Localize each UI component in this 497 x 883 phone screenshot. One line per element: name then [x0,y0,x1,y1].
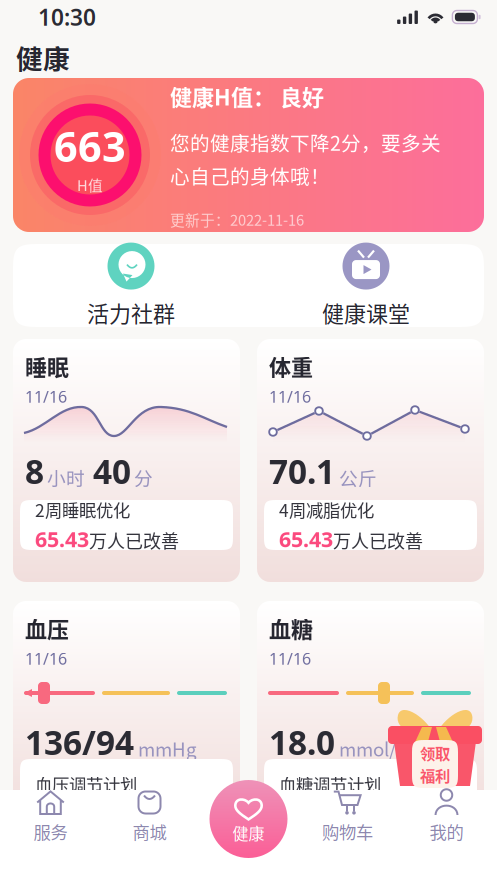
button[interactable]: 4周减脂优化 [264,500,477,550]
staticText: 136/94 [25,720,134,764]
staticText: 睡眠 [25,350,69,382]
staticText: 活力社群 [87,297,175,328]
button[interactable]: 睡眠 [13,339,240,582]
staticText: 血糖 [269,612,313,644]
staticText: mmHg [138,735,197,762]
staticText: 血糖调节计划 [279,771,381,797]
staticText: 健康H值： 良好 [170,80,324,112]
staticText: 11/16 [269,386,311,407]
staticText: 万人已改善 [333,527,423,553]
staticText: 11/16 [25,386,67,407]
staticText: 服务 [33,819,67,844]
staticText: 65.43 [35,525,89,553]
button[interactable]: 血糖调节计划 [264,759,477,809]
staticText: 健康 [232,821,264,844]
button[interactable]: 663 [13,78,484,232]
staticText: 健康 [16,38,70,77]
staticText: 分 [134,464,153,491]
button[interactable]: 血压 [13,601,240,811]
staticText: mmol/L [339,735,406,762]
button[interactable]: 血糖 [257,601,484,811]
button[interactable]: 健康课堂 [248,244,483,327]
staticText: 领取 [420,742,450,764]
button[interactable]: 领取福利 [386,700,484,792]
staticText: 小时 [47,464,85,491]
staticText: 65.43 [279,525,333,553]
button[interactable]: 血压调节计划 [20,759,233,809]
staticText: 血压 [25,612,69,644]
staticText: 11/16 [269,648,311,669]
staticText: 11/16 [25,648,67,669]
button[interactable]: 购物车 [298,790,397,883]
staticText: 2周睡眠优化 [35,497,130,522]
staticText: 4周减脂优化 [279,497,374,522]
staticText: 万人已改善 [89,527,179,553]
staticText: 70.1 [269,449,335,493]
staticText: 40 [93,449,131,493]
staticText: 我的 [429,819,463,844]
button[interactable]: 2周睡眠优化 [20,500,233,550]
staticText: 血压调节计划 [35,771,137,797]
button[interactable]: 活力社群 [13,244,248,327]
staticText: 福利 [420,764,450,786]
staticText: 10:30 [38,2,96,32]
staticText: 8 [25,449,44,493]
staticText: 您的健康指数下降2分，要多关 [170,128,441,156]
button[interactable]: 健康 [207,778,289,860]
staticText: 健康课堂 [322,297,410,328]
button[interactable]: 我的 [397,790,496,883]
staticText: 商城 [132,819,166,844]
staticText: 18.0 [269,720,335,764]
staticText: 663 [54,118,126,173]
staticText: H值 [77,174,103,195]
button[interactable]: 体重 [257,339,484,582]
staticText: 心自己的身体哦！ [170,161,330,190]
button[interactable]: 商城 [100,790,199,883]
staticText: 更新于：2022-11-16 [170,209,304,230]
staticText: 购物车 [322,819,373,844]
staticText: 公斤 [339,464,377,491]
button[interactable]: 服务 [1,790,100,883]
staticText: 体重 [269,350,313,382]
